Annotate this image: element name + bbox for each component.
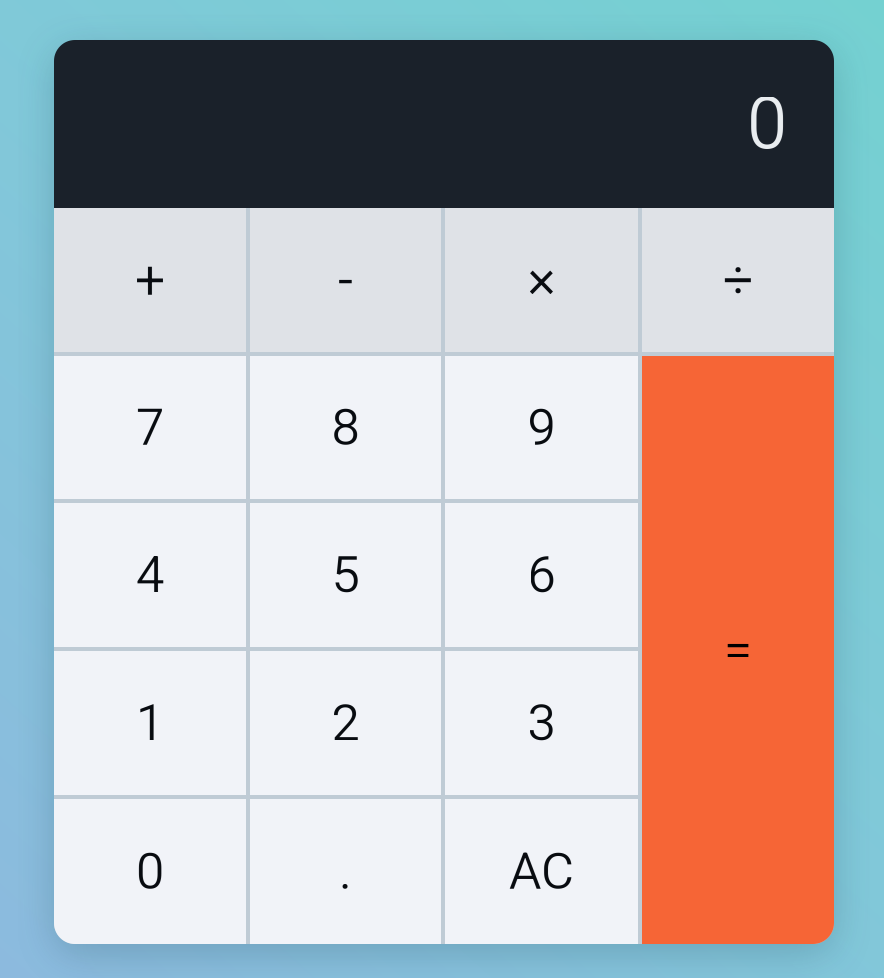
staticText: = — [724, 620, 752, 680]
staticText: 6 — [527, 545, 555, 605]
button[interactable]: . — [250, 799, 441, 944]
button[interactable]: Equals — [642, 356, 834, 944]
staticText: 3 — [527, 693, 555, 753]
button[interactable]: Subtract — [250, 208, 441, 352]
staticText: + — [135, 249, 165, 311]
button[interactable]: 5 — [250, 503, 441, 647]
staticText: 5 — [331, 545, 359, 605]
staticText: . — [339, 842, 352, 901]
staticText: - — [338, 249, 353, 311]
button[interactable]: 2 — [250, 651, 441, 795]
staticText: 7 — [136, 398, 164, 457]
button[interactable]: 6 — [445, 503, 638, 647]
button[interactable]: 7 — [54, 356, 246, 499]
button[interactable]: 0 — [54, 799, 246, 944]
button[interactable]: 4 — [54, 503, 246, 647]
button[interactable]: 1 — [54, 651, 246, 795]
button[interactable]: 3 — [445, 651, 638, 795]
button[interactable]: Add — [54, 208, 246, 352]
staticText: ÷ — [723, 249, 753, 311]
button[interactable]: Divide — [642, 208, 834, 352]
staticText: 2 — [331, 693, 359, 753]
staticText: × — [527, 249, 555, 311]
staticText: 4 — [136, 545, 164, 605]
button[interactable]: 9 — [445, 356, 638, 499]
button[interactable]: Multiply — [445, 208, 638, 352]
staticText: AC — [509, 842, 574, 901]
button[interactable]: 8 — [250, 356, 441, 499]
button[interactable]: AC — [445, 799, 638, 944]
staticText: 1 — [136, 693, 164, 753]
staticText: 8 — [331, 398, 359, 457]
staticText: 9 — [527, 398, 555, 457]
staticText: 0 — [747, 82, 787, 166]
staticText: 0 — [136, 842, 164, 901]
